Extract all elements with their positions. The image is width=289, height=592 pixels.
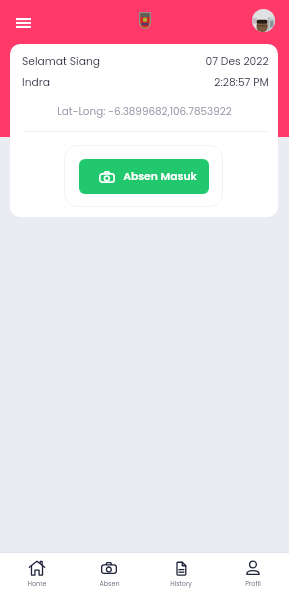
staticText: Absen: [99, 579, 120, 588]
button[interactable]: Absen: [73, 553, 145, 592]
staticText: Home: [27, 579, 47, 588]
button[interactable]: Profil: [217, 553, 289, 592]
button[interactable]: Home: [0, 553, 73, 592]
staticText: Profil: [245, 579, 261, 588]
button[interactable]: Profile photo: [244, 1, 280, 37]
button[interactable]: History: [145, 553, 217, 592]
staticText: Indra: [22, 75, 50, 90]
button[interactable]: Open navigation menu: [8, 7, 39, 38]
staticText: Selamat Siang: [22, 54, 100, 69]
staticText: 2:28:57 PM: [214, 75, 269, 90]
staticText: Lat-Long: -6.3899682,106.7853922: [57, 104, 232, 119]
staticText: Absen Masuk: [123, 169, 197, 184]
button[interactable]: Absen Masuk: [79, 159, 209, 194]
staticText: History: [170, 579, 192, 588]
staticText: 07 Des 2022: [205, 54, 269, 69]
